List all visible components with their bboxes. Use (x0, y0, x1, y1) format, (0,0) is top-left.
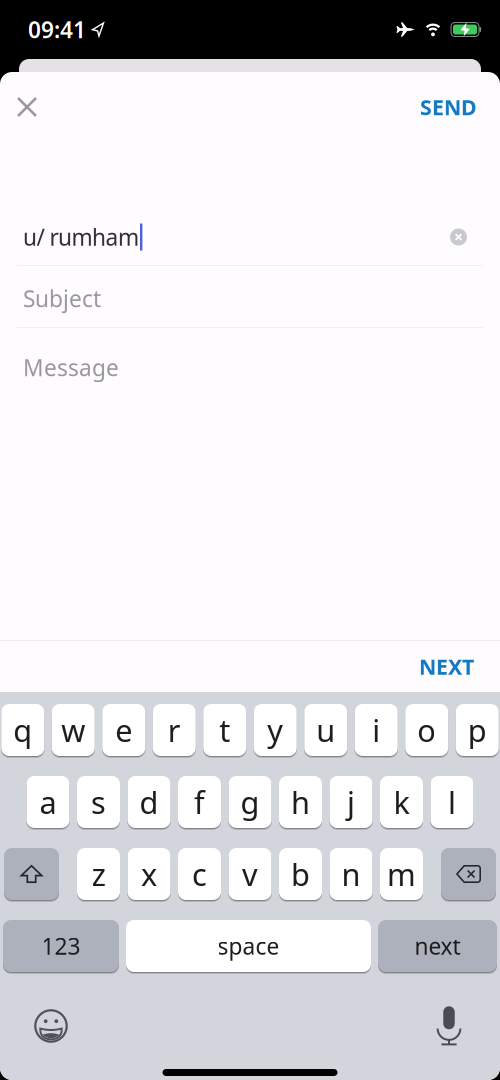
staticText: e (115, 710, 132, 750)
staticText: space (217, 931, 279, 961)
staticText: i (372, 710, 380, 750)
staticText: a (39, 782, 56, 822)
staticText: 123 (41, 931, 80, 961)
staticText: y (267, 710, 283, 750)
button[interactable]: 123 (3, 920, 119, 972)
button[interactable]: p (456, 704, 499, 756)
button[interactable]: c (178, 848, 221, 900)
staticText: o (417, 710, 436, 750)
staticText: 09:41 (28, 14, 86, 44)
button[interactable]: t (203, 704, 246, 756)
button[interactable]: Subject (0, 266, 500, 327)
button[interactable]: h (279, 776, 322, 828)
button[interactable]: u (304, 704, 347, 756)
button[interactable]: f (178, 776, 221, 828)
staticText: d (139, 782, 158, 822)
button[interactable]: y (254, 704, 297, 756)
staticText: SEND (420, 93, 477, 121)
button[interactable]: Emoji (34, 1009, 68, 1043)
staticText: next (414, 931, 460, 961)
button[interactable]: b (279, 848, 322, 900)
button[interactable]: k (380, 776, 423, 828)
staticText: u (316, 710, 335, 750)
button[interactable]: Message (0, 328, 500, 407)
button[interactable]: SEND (420, 93, 500, 121)
staticText: NEXT (419, 652, 474, 681)
staticText: r (168, 710, 181, 750)
staticText: t (219, 710, 230, 750)
button[interactable]: w (52, 704, 95, 756)
button[interactable]: g (228, 776, 271, 828)
staticText: m (387, 854, 416, 894)
button[interactable]: Clear text (450, 228, 467, 245)
button[interactable]: v (228, 848, 271, 900)
button[interactable]: l (430, 776, 473, 828)
staticText: h (291, 782, 310, 822)
staticText: x (141, 854, 157, 894)
button[interactable]: n (329, 848, 372, 900)
staticText: Message (23, 352, 119, 382)
button[interactable]: NEXT (419, 652, 500, 681)
staticText: p (468, 710, 487, 750)
staticText: u/ rumham (23, 222, 139, 252)
staticText: Subject (23, 283, 101, 313)
staticText: s (91, 782, 106, 822)
button[interactable]: q (1, 704, 44, 756)
button[interactable]: e (102, 704, 145, 756)
staticText: f (194, 782, 205, 822)
button[interactable]: i (355, 704, 398, 756)
button[interactable]: r (153, 704, 196, 756)
button[interactable]: z (77, 848, 120, 900)
staticText: c (192, 854, 207, 894)
button[interactable]: o (405, 704, 448, 756)
button[interactable]: u/ rumham (0, 209, 500, 265)
button[interactable]: Close (0, 97, 37, 117)
button[interactable]: Shift (4, 848, 59, 900)
staticText: v (242, 854, 258, 894)
staticText: q (13, 710, 32, 750)
button[interactable]: Delete (441, 848, 496, 900)
staticText: j (347, 782, 355, 822)
button[interactable]: next (378, 920, 497, 972)
staticText: w (61, 710, 85, 750)
staticText: g (240, 782, 259, 822)
button[interactable]: d (127, 776, 170, 828)
button[interactable]: a (26, 776, 69, 828)
button[interactable]: j (329, 776, 372, 828)
button[interactable]: space (126, 920, 371, 972)
button[interactable]: x (127, 848, 170, 900)
staticText: z (91, 854, 105, 894)
button[interactable]: Dictation (436, 1006, 462, 1046)
staticText: k (393, 782, 409, 822)
button[interactable]: m (380, 848, 423, 900)
staticText: l (448, 782, 456, 822)
staticText: b (291, 854, 310, 894)
staticText: n (341, 854, 360, 894)
button[interactable]: s (77, 776, 120, 828)
